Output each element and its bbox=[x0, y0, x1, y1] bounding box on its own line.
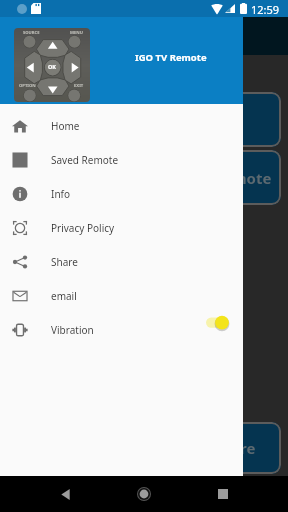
staticText: Saved Remote bbox=[51, 153, 244, 167]
button[interactable]: Home bbox=[0, 109, 243, 143]
button[interactable]: Saved Remote bbox=[0, 143, 243, 177]
staticText: IGO TV Remote bbox=[135, 51, 207, 64]
staticText: MENU bbox=[70, 30, 83, 36]
staticText: Saved Remote bbox=[165, 168, 272, 188]
button[interactable]: Home bbox=[131, 476, 157, 512]
button[interactable]: Info bbox=[0, 177, 243, 211]
button[interactable]: email bbox=[0, 279, 243, 313]
staticText: Info bbox=[51, 187, 244, 201]
button[interactable]: Share bbox=[14, 422, 281, 474]
button[interactable]: Start Remote bbox=[14, 92, 281, 147]
staticText: Vibration bbox=[51, 323, 244, 337]
button[interactable]: Back bbox=[52, 476, 78, 512]
button[interactable]: Saved Remote bbox=[14, 150, 281, 205]
staticText: email bbox=[51, 289, 244, 303]
staticText: Share bbox=[213, 438, 256, 458]
staticText: Home bbox=[51, 119, 244, 133]
button[interactable]: Share bbox=[0, 245, 243, 279]
button[interactable]: Privacy Policy bbox=[0, 211, 243, 245]
staticText: SOURCE bbox=[23, 30, 40, 36]
staticText: 12:59 bbox=[251, 2, 280, 17]
staticText: OPTION bbox=[19, 83, 36, 89]
staticText: OK bbox=[48, 63, 57, 70]
staticText: Privacy Policy bbox=[51, 221, 244, 235]
staticText: EXIT bbox=[74, 83, 84, 89]
button[interactable]: Vibration bbox=[0, 313, 243, 347]
staticText: Share bbox=[51, 255, 244, 269]
button[interactable]: Recent apps bbox=[210, 476, 236, 512]
